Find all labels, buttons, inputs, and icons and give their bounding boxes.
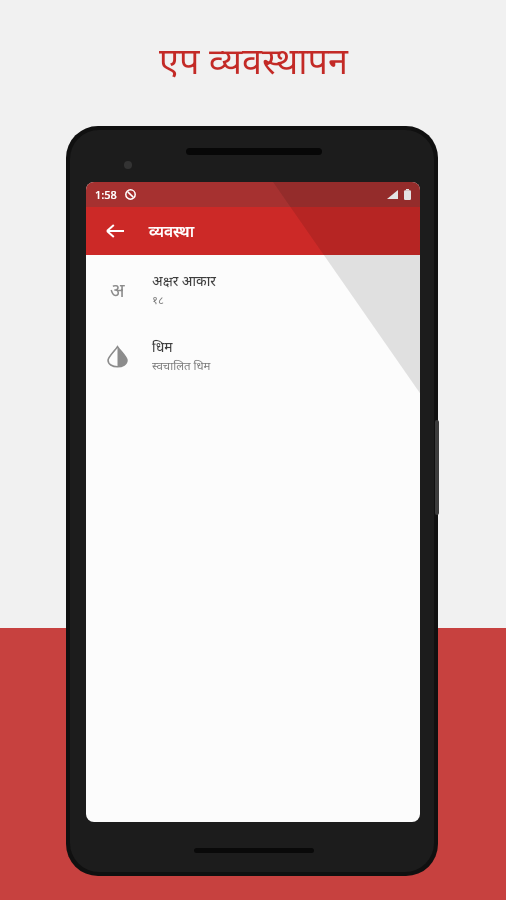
staticText: व्यवस्था	[149, 220, 194, 242]
button[interactable]: अ	[86, 262, 420, 318]
staticText: स्वचालित धिम	[152, 358, 211, 374]
staticText: अक्षर आकार	[152, 272, 217, 290]
button[interactable]: Back	[98, 214, 132, 248]
staticText: 1:58	[95, 187, 117, 202]
staticText: एप व्यवस्थापन	[159, 36, 348, 85]
button[interactable]: धिम	[86, 328, 420, 384]
staticText: १८	[152, 292, 164, 308]
button[interactable]: Back	[86, 207, 420, 255]
staticText: अ	[110, 277, 125, 303]
staticText: धिम	[152, 338, 173, 356]
